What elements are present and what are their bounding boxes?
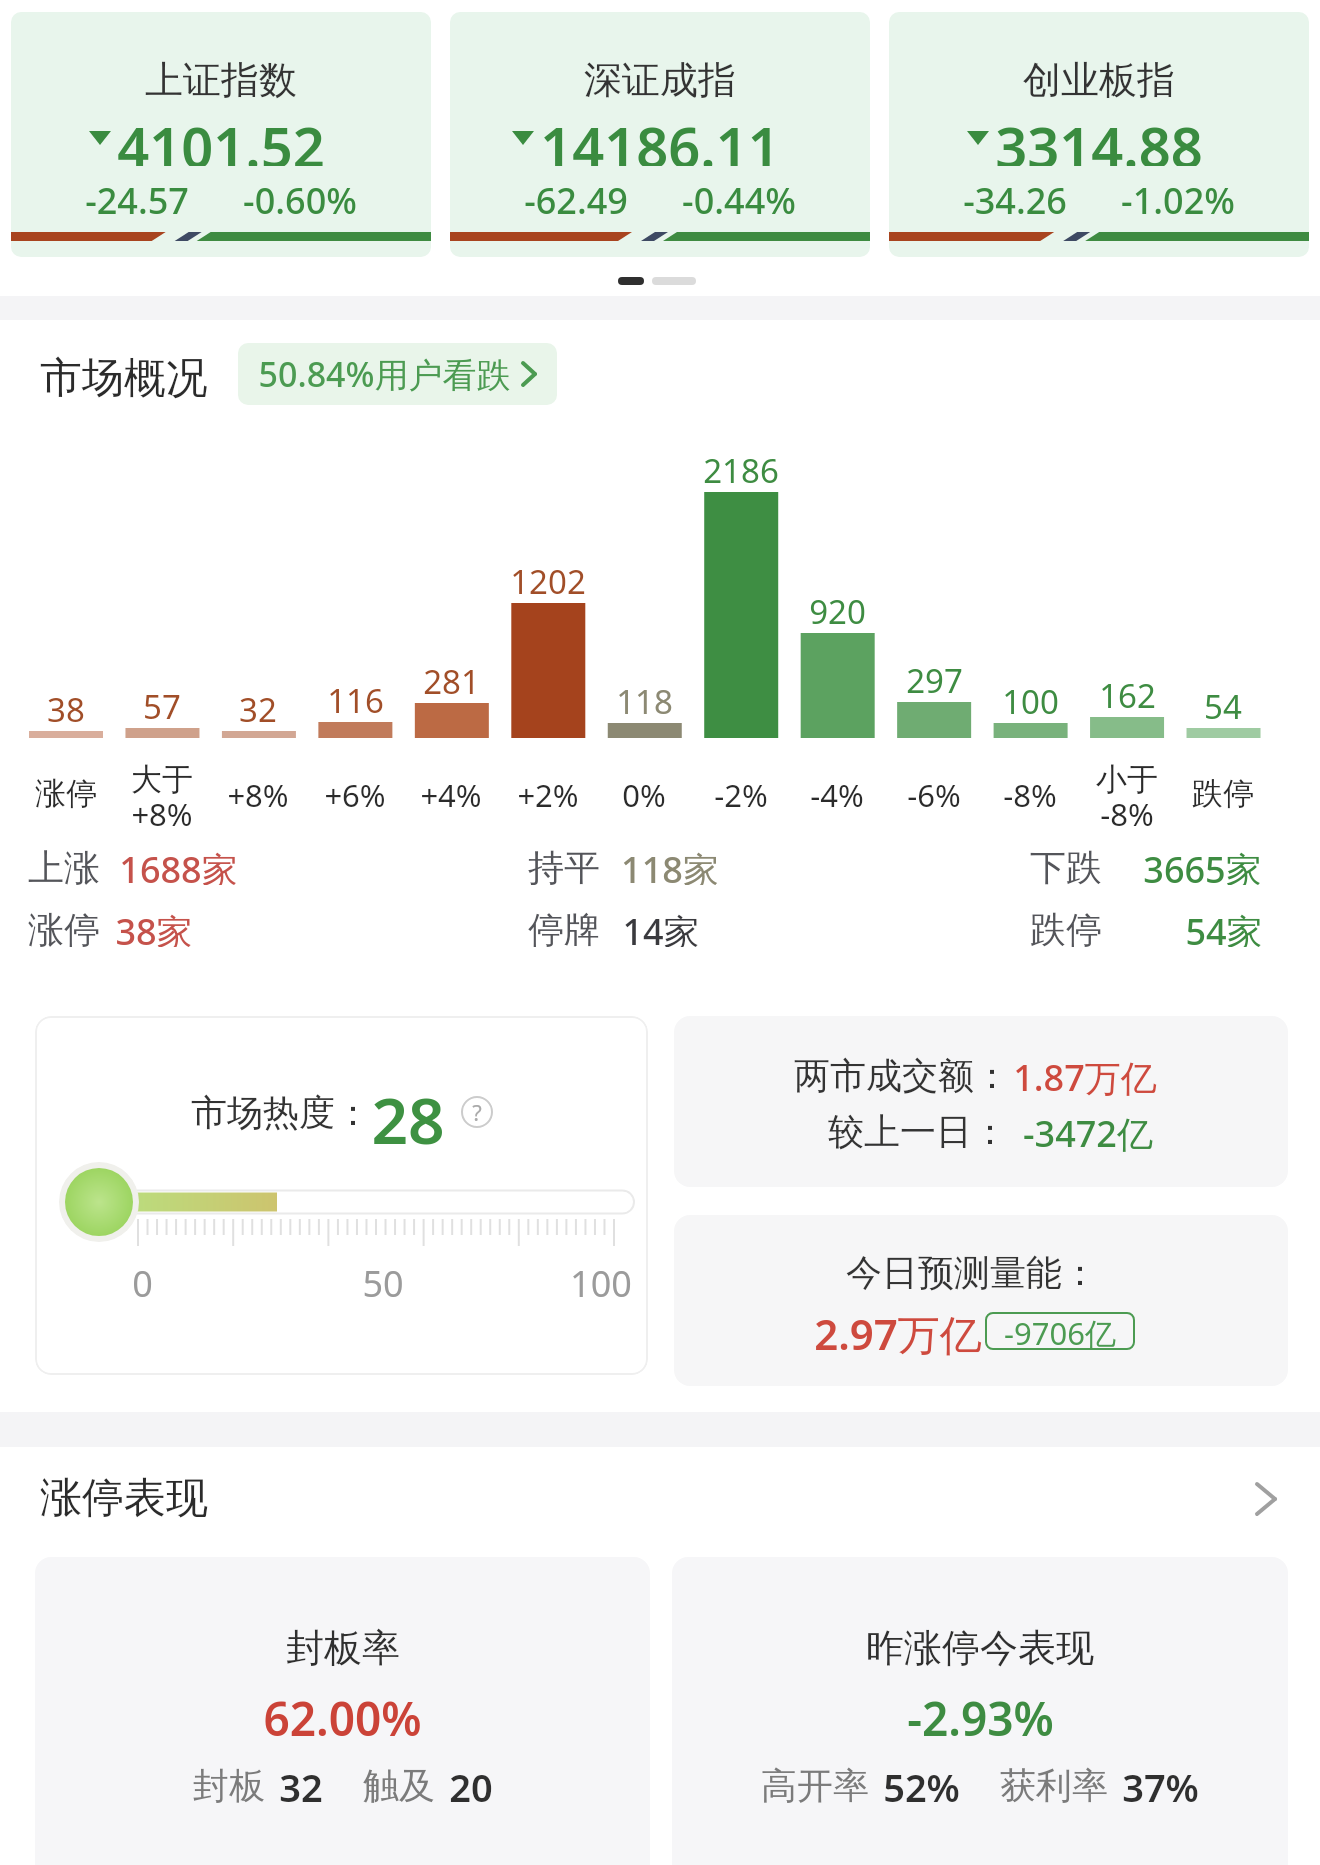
staticText: 38 [47,687,85,723]
staticText: 57 [143,684,181,720]
staticText: 跌停 [1192,774,1254,812]
staticText: +6% [324,774,386,812]
staticText: -0.60% [243,176,357,216]
staticText: 触及 [363,1763,435,1808]
staticText: 0 [132,1259,153,1299]
staticText: 较上一日： [828,1109,1008,1153]
staticText: -34.26 [963,176,1067,216]
staticText: 获利率 [1000,1763,1108,1808]
staticText: 52% [883,1761,960,1809]
staticText: 297 [906,658,963,694]
staticText: 涨停表现 [40,1472,208,1525]
staticText: -62.49 [524,176,628,216]
button[interactable]: 今日预测量能： [674,1215,1288,1386]
staticText: 920 [809,589,866,625]
staticText: 100 [570,1259,632,1299]
staticText: 38家 [115,907,193,947]
staticText: 两市成交额： [794,1053,1010,1097]
staticText: 62.00% [263,1687,422,1743]
staticText: +4% [420,774,482,812]
staticText: 54 [1204,684,1242,720]
staticText: 高开率 [761,1763,869,1808]
staticText: 跌停 [1030,907,1102,947]
staticText: 深证成指 [584,56,736,100]
staticText: 1202 [510,559,586,595]
staticText: 118 [616,679,673,715]
staticText: 2.97万亿 [814,1305,982,1357]
staticText: 涨停 [35,774,97,812]
button[interactable]: 封板率 [35,1557,650,1865]
staticText: 持平 [528,845,600,885]
button[interactable]: 创业板指 [889,12,1309,257]
staticText: 今日预测量能： [846,1250,1098,1294]
staticText: 2186 [703,448,779,484]
button[interactable]: 上证指数 [11,12,431,257]
staticText: 37% [1122,1761,1199,1809]
staticText: 116 [327,678,384,714]
staticText: 昨涨停今表现 [866,1624,1094,1672]
staticText: 1688家 [119,845,238,885]
staticText: 市场概况 [40,352,208,400]
button[interactable]: 50.84%用户看跌 [238,343,557,405]
staticText: +2% [517,774,579,812]
staticText: 54家 [1185,907,1263,947]
staticText: 50.84%用户看跌 [258,351,511,397]
button[interactable]: 昨涨停今表现 [672,1557,1288,1865]
staticText: -24.57 [85,176,189,216]
staticText: 涨停 [28,907,100,947]
staticText: 32 [279,1761,323,1809]
staticText: 118家 [621,845,719,885]
staticText: 封板 [193,1763,265,1808]
staticText: 封板率 [286,1624,400,1672]
staticText: 14186.11 [540,108,780,166]
staticText: 市场热度： [191,1090,371,1135]
staticText: 4101.52 [117,108,325,166]
staticText: +8% [227,774,289,812]
staticText: 创业板指 [1023,56,1175,100]
staticText: 50 [362,1259,404,1299]
staticText: -4% [810,774,864,812]
button[interactable]: 两市成交额： [674,1016,1288,1187]
button[interactable]: 市场热度： [35,1016,648,1375]
staticText: 14家 [622,907,700,947]
staticText: 上证指数 [145,56,297,100]
staticText: -1.02% [1121,176,1235,216]
staticText: -8% [1003,774,1057,812]
staticText: -3472亿 [1023,1109,1153,1153]
staticText: 1.87万亿 [1013,1053,1157,1097]
staticText: 162 [1099,673,1156,709]
staticText: 281 [423,659,480,695]
staticText: 停牌 [528,907,600,947]
staticText: -2% [714,774,768,812]
staticText: -2.93% [907,1687,1054,1743]
staticText: 大于 +8% [131,760,193,832]
staticText: 小于 -8% [1096,760,1158,832]
staticText: 0% [622,774,666,812]
button[interactable]: 涨停表现 [0,1460,1320,1536]
staticText: -6% [907,774,961,812]
staticText: 100 [1002,679,1059,715]
staticText: -0.44% [682,176,796,216]
button[interactable]: 深证成指 [450,12,870,257]
staticText: 20 [449,1761,493,1809]
staticText: 3665家 [1143,845,1262,885]
staticText: 28 [371,1076,445,1148]
staticText: 上涨 [28,845,100,885]
staticText: 下跌 [1030,845,1102,885]
staticText: 3314.88 [995,108,1203,166]
staticText: 32 [239,687,277,723]
staticText: ? [472,1097,482,1127]
staticText: -9706亿 [1004,1312,1116,1350]
